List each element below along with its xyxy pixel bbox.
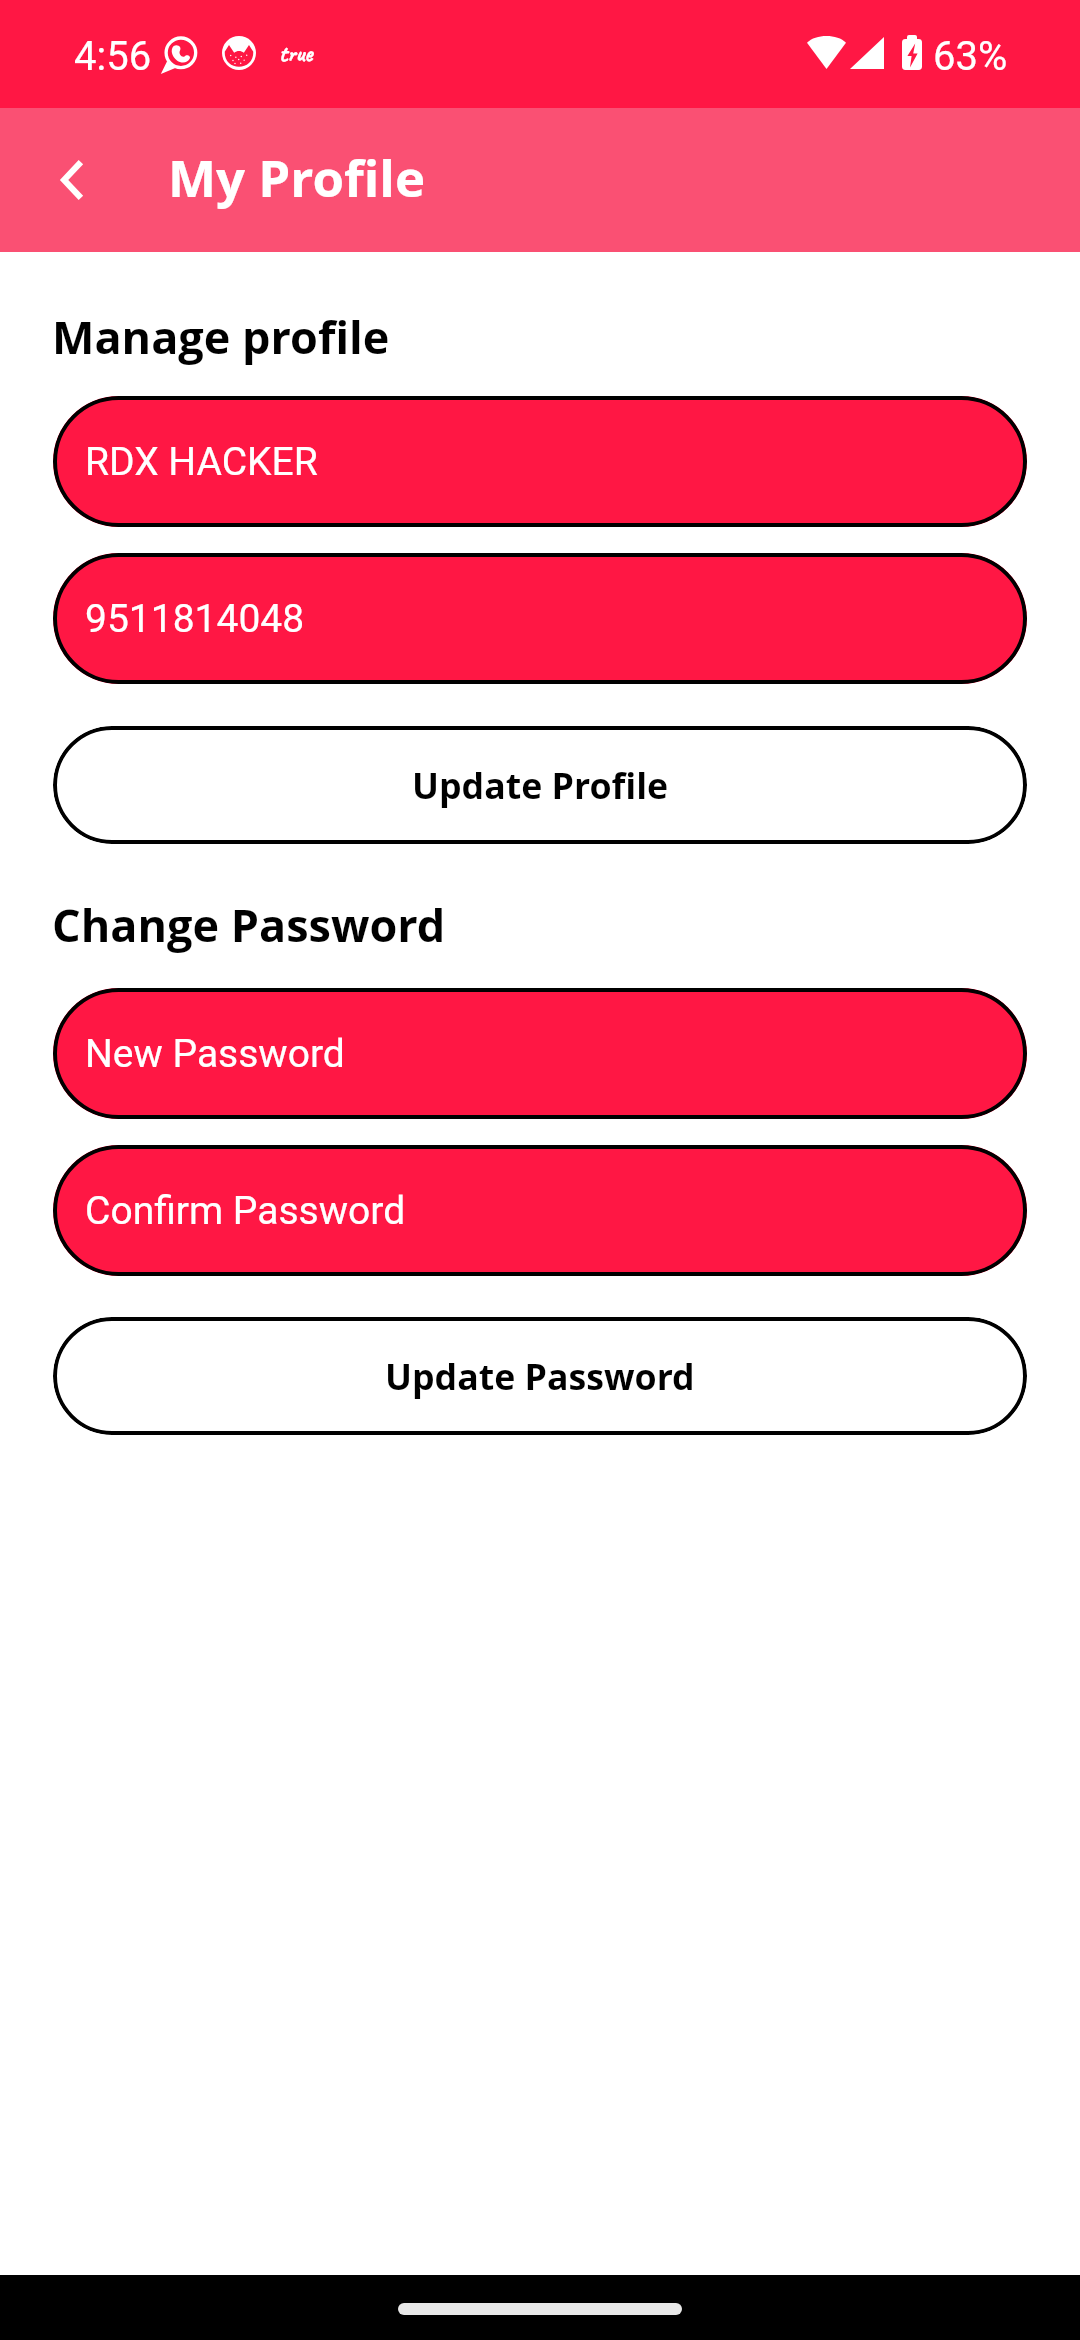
staticText: true xyxy=(279,38,313,68)
staticText: 4:56 xyxy=(74,33,152,80)
staticText: Update Password xyxy=(385,1352,695,1401)
staticText: Update Profile xyxy=(412,761,669,810)
button[interactable]: Update Password xyxy=(53,1317,1027,1435)
button[interactable]: Confirm Password xyxy=(53,1145,1027,1276)
staticText: Confirm Password xyxy=(85,1188,406,1234)
staticText: 63% xyxy=(933,33,1008,80)
button[interactable]: Update Profile xyxy=(53,726,1027,844)
button[interactable]: Back xyxy=(36,144,108,216)
button[interactable]: RDX HACKER xyxy=(53,396,1027,527)
button[interactable]: New Password xyxy=(53,988,1027,1119)
staticText: Change Password xyxy=(52,894,446,955)
button[interactable]: 9511814048 xyxy=(53,553,1027,684)
staticText: RDX HACKER xyxy=(85,439,318,485)
staticText: My Profile xyxy=(168,142,426,211)
staticText: New Password xyxy=(85,1031,345,1077)
staticText: Manage profile xyxy=(52,306,390,367)
staticText: 9511814048 xyxy=(85,596,305,642)
